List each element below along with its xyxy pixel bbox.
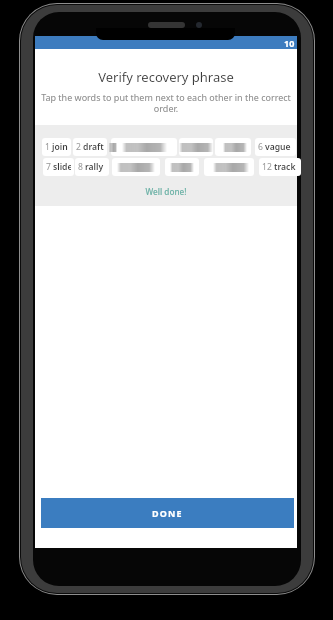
button[interactable] <box>111 138 177 156</box>
staticText: DONE <box>152 507 183 519</box>
staticText: Tap the words to put them next to each o… <box>41 91 291 115</box>
staticText: 10 <box>284 37 295 49</box>
staticText: 8 <box>78 161 83 173</box>
button[interactable]: DONE <box>41 498 294 528</box>
button[interactable]: 7 <box>43 158 74 176</box>
staticText: 7 <box>46 161 51 173</box>
staticText: track <box>274 161 296 173</box>
staticText: 12 <box>262 161 272 173</box>
staticText: Well done! <box>35 186 297 197</box>
staticText: 1 <box>45 141 50 153</box>
staticText: join <box>52 141 68 153</box>
button[interactable]: 1 <box>42 138 71 156</box>
staticText: slide <box>53 161 71 173</box>
button[interactable]: 8 <box>75 158 109 176</box>
button[interactable] <box>215 138 251 156</box>
button[interactable]: 6 <box>255 138 296 156</box>
button[interactable]: 2 <box>73 138 107 156</box>
staticText: 6 <box>258 141 263 153</box>
button[interactable] <box>204 158 254 176</box>
button[interactable] <box>179 138 213 156</box>
staticText: 2 <box>76 141 81 153</box>
staticText: vague <box>265 141 291 153</box>
staticText: draft <box>83 141 104 153</box>
staticText: Verify recovery phrase <box>35 68 297 86</box>
button[interactable] <box>112 158 160 176</box>
button[interactable]: 12 <box>259 158 301 176</box>
button[interactable] <box>165 158 199 176</box>
staticText: rally <box>85 161 104 173</box>
